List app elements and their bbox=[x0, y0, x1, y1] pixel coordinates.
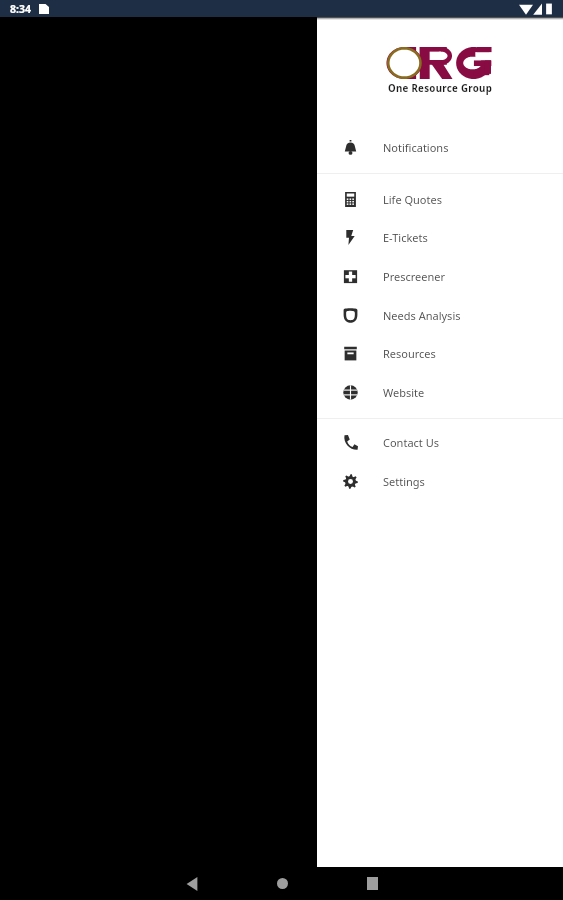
button[interactable]: E-Tickets bbox=[317, 218, 563, 257]
staticText: Contact Us bbox=[383, 435, 439, 450]
button[interactable]: Recent apps bbox=[344, 867, 400, 900]
button[interactable]: Home bbox=[254, 867, 310, 900]
button[interactable]: Life Quotes bbox=[317, 180, 563, 219]
staticText: Prescreener bbox=[383, 269, 446, 284]
staticText: Notifications bbox=[383, 140, 449, 155]
button[interactable]: Website bbox=[317, 373, 563, 412]
button[interactable]: Notifications bbox=[317, 128, 563, 167]
staticText: Resources bbox=[383, 346, 436, 361]
staticText: 8:34 bbox=[10, 2, 31, 16]
staticText: Life Quotes bbox=[383, 192, 442, 207]
button[interactable]: Settings bbox=[317, 462, 563, 501]
button[interactable]: Prescreener bbox=[317, 257, 563, 296]
button[interactable]: Contact Us bbox=[317, 423, 563, 462]
button[interactable]: Resources bbox=[317, 334, 563, 373]
staticText: Website bbox=[383, 385, 425, 400]
button[interactable]: Back bbox=[164, 867, 220, 900]
staticText: Settings bbox=[383, 474, 425, 489]
staticText: Needs Analysis bbox=[383, 308, 461, 323]
staticText: One Resource Group bbox=[388, 82, 493, 95]
staticText: E-Tickets bbox=[383, 230, 428, 245]
button[interactable]: Needs Analysis bbox=[317, 296, 563, 335]
